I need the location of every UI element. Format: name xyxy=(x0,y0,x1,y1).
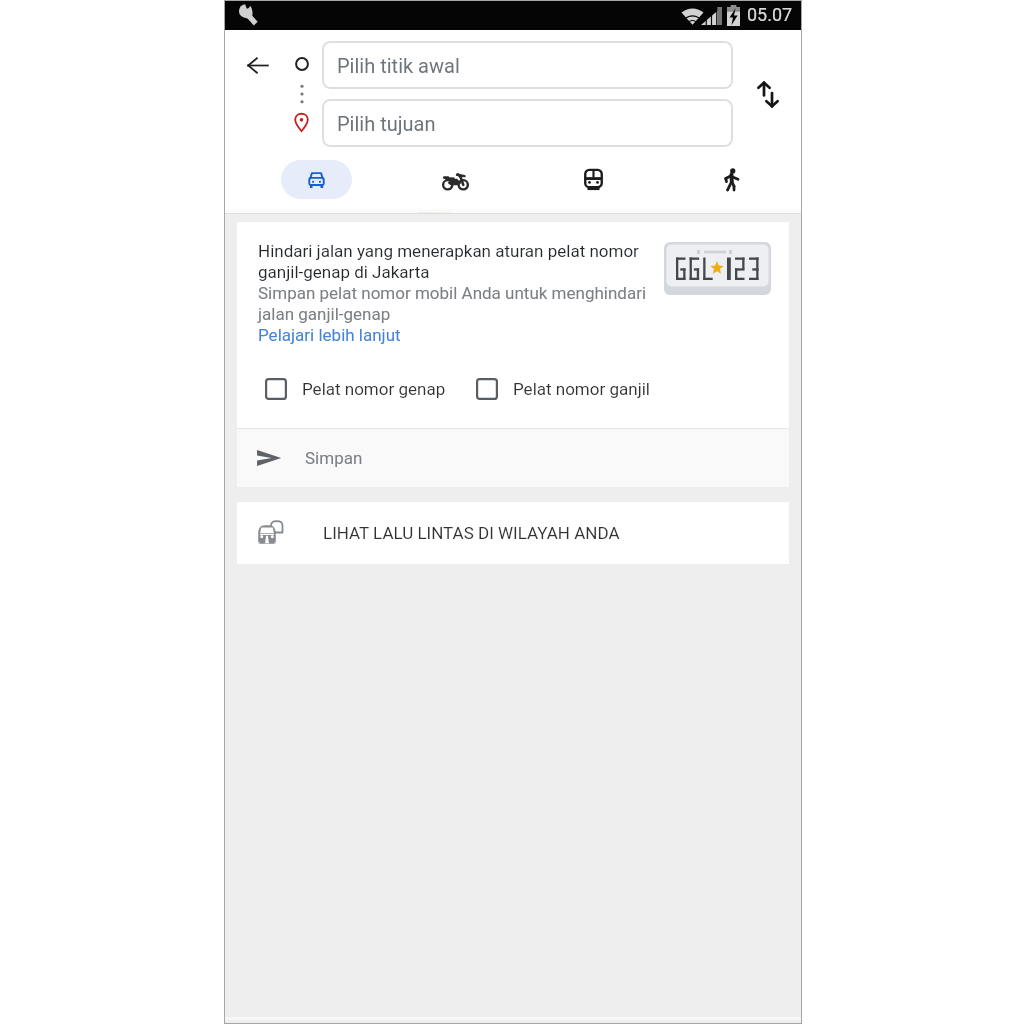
button[interactable]: Walking xyxy=(708,160,754,199)
button[interactable]: Transit xyxy=(570,160,616,199)
button[interactable]: Simpan xyxy=(237,429,789,487)
button[interactable]: Pelajari lebih lanjut xyxy=(258,325,401,346)
staticText: Pelat nomor genap xyxy=(302,379,446,399)
staticText: Simpan pelat nomor mobil Anda untuk meng… xyxy=(258,283,648,325)
button[interactable]: Two-wheeler xyxy=(432,160,478,199)
button[interactable]: Driving xyxy=(281,160,352,199)
button[interactable]: Pilih tujuan xyxy=(322,99,733,147)
button[interactable]: LIHAT LALU LINTAS DI WILAYAH ANDA xyxy=(237,502,789,564)
staticText: Hindari jalan yang menerapkan aturan pel… xyxy=(258,241,648,283)
button[interactable]: Back xyxy=(235,43,281,87)
staticText: Pelat nomor ganjil xyxy=(513,379,650,399)
button[interactable]: Swap start and destination xyxy=(746,72,790,116)
staticText: 05.07 xyxy=(747,4,793,25)
button[interactable]: Pilih titik awal xyxy=(322,41,733,89)
staticText: Pilih titik awal xyxy=(337,54,460,77)
staticText: LIHAT LALU LINTAS DI WILAYAH ANDA xyxy=(323,523,620,543)
button[interactable]: Pelat nomor ganjil xyxy=(476,374,650,404)
staticText: Pilih tujuan xyxy=(337,112,436,135)
button[interactable]: Pelat nomor genap xyxy=(265,374,446,404)
staticText: Simpan xyxy=(305,448,363,468)
